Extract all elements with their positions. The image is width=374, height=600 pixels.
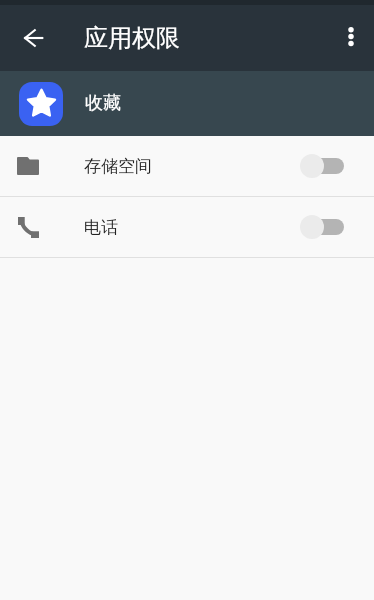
button[interactable]: 电话 bbox=[0, 197, 374, 257]
staticText: 存储空间 bbox=[84, 156, 152, 177]
button[interactable]: More options bbox=[327, 14, 374, 62]
button[interactable]: 收藏 bbox=[0, 71, 374, 136]
button[interactable]: 存储空间 permission toggle, off bbox=[300, 153, 344, 179]
button[interactable]: 存储空间 bbox=[0, 136, 374, 196]
button[interactable]: 电话 permission toggle, off bbox=[300, 214, 344, 240]
button[interactable]: Back bbox=[10, 14, 58, 62]
staticText: 应用权限 bbox=[84, 23, 180, 53]
staticText: 收藏 bbox=[85, 92, 121, 115]
staticText: 电话 bbox=[84, 217, 118, 238]
